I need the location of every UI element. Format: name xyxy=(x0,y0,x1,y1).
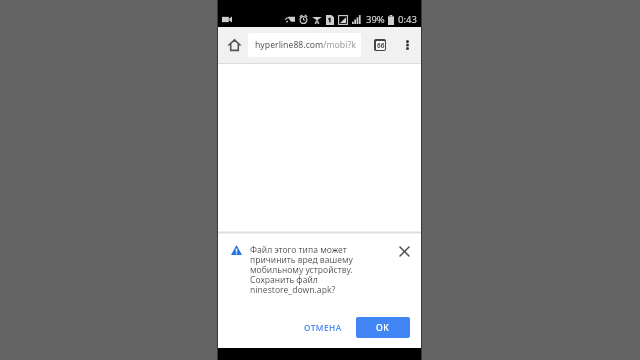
staticText: 39% xyxy=(366,13,385,26)
staticText: 66 xyxy=(377,41,385,50)
staticText: hyperline88.com/mobi?k xyxy=(255,39,356,51)
button[interactable]: Tabs, 66 open xyxy=(368,27,392,63)
button[interactable]: ОТМЕНА xyxy=(296,317,347,338)
button[interactable]: hyperline88.com/mobi?k xyxy=(248,33,361,57)
staticText: OK xyxy=(376,322,390,334)
staticText: 0:43 xyxy=(398,13,417,26)
button[interactable]: Home xyxy=(220,27,248,63)
staticText: ОТМЕНА xyxy=(304,322,342,333)
button[interactable]: More options xyxy=(395,27,419,63)
button[interactable]: OK xyxy=(356,317,410,338)
staticText: Файл этого типа может причинить вред ваш… xyxy=(250,244,353,296)
button[interactable]: Close xyxy=(395,240,413,262)
